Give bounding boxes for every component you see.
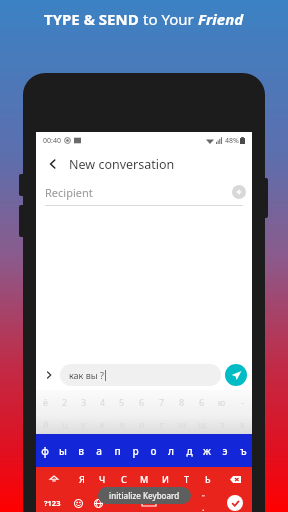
staticText: э [222, 444, 228, 458]
button[interactable]: Send [225, 364, 247, 386]
button[interactable]: л [163, 435, 179, 466]
button[interactable]: М [135, 468, 154, 490]
button[interactable]: - [233, 391, 251, 412]
staticText: к [100, 418, 105, 430]
staticText: TYPE & SEND [44, 9, 143, 29]
staticText: ъ [240, 444, 247, 458]
staticText: New conversation [69, 156, 175, 173]
button[interactable]: ш [173, 414, 191, 433]
button[interactable]: н [133, 414, 151, 433]
button[interactable]: 4 [94, 391, 111, 412]
button[interactable]: р [127, 435, 143, 466]
staticText: как вы ? [69, 369, 104, 381]
button[interactable]: 2 [56, 391, 73, 412]
staticText: Friend [198, 9, 244, 29]
staticText: Ь [205, 473, 211, 485]
button[interactable]: ю [213, 391, 231, 412]
button[interactable]: в [73, 435, 89, 466]
button[interactable]: Я [72, 468, 91, 490]
button[interactable]: С [114, 468, 133, 490]
button[interactable]: '' [191, 492, 216, 512]
button[interactable]: э [217, 435, 233, 466]
staticText: Т [184, 473, 190, 485]
staticText: ш [178, 418, 187, 430]
button[interactable]: 8 [173, 391, 191, 412]
button[interactable]: Add recipient [232, 185, 246, 199]
button[interactable]: з [213, 414, 231, 433]
button[interactable]: Backspace [219, 468, 251, 490]
button[interactable]: Back [41, 152, 65, 176]
button[interactable]: ъ [235, 435, 251, 466]
staticText: в [78, 444, 84, 458]
button[interactable]: г [153, 414, 171, 433]
button[interactable]: Shift [37, 468, 70, 490]
button[interactable]: Change language [89, 492, 107, 512]
staticText: й [43, 418, 49, 430]
button[interactable]: ?123 [37, 492, 67, 512]
staticText: 6 [199, 396, 205, 408]
button[interactable]: й [37, 414, 54, 433]
button[interactable]: Т [177, 468, 196, 490]
staticText: - [241, 396, 244, 408]
staticText: С [121, 473, 127, 485]
staticText: ё [43, 396, 48, 408]
button[interactable]: 7 [153, 391, 171, 412]
button[interactable]: к [94, 414, 111, 433]
button[interactable]: д [181, 435, 197, 466]
button[interactable]: И [156, 468, 175, 490]
button[interactable]: е [113, 414, 131, 433]
staticText: ц [62, 418, 68, 430]
staticText: п [114, 444, 121, 458]
staticText: ?123 [44, 498, 61, 508]
staticText: л [168, 444, 174, 458]
button[interactable]: Enter [227, 495, 243, 511]
button[interactable]: ы [55, 435, 71, 466]
button[interactable]: 5 [113, 391, 131, 412]
button[interactable]: Attach [41, 367, 57, 383]
button[interactable]: как вы ? [60, 364, 221, 386]
staticText: 00:40 [43, 136, 61, 146]
staticText: о [150, 444, 157, 458]
staticText: щ [198, 418, 207, 430]
button[interactable]: а [91, 435, 107, 466]
button[interactable]: Ь [198, 468, 217, 490]
button[interactable]: о [145, 435, 161, 466]
staticText: д [186, 444, 193, 458]
staticText: х [240, 418, 245, 430]
staticText: е [120, 418, 125, 430]
button[interactable]: ф [37, 435, 53, 466]
button[interactable]: у [75, 414, 92, 433]
staticText: Recipient [45, 185, 93, 200]
staticText: 4 [100, 396, 106, 408]
staticText: . [202, 501, 205, 512]
staticText: н [139, 418, 145, 430]
staticText: to Your [143, 9, 198, 29]
staticText: ю [218, 396, 226, 408]
button[interactable]: 6 [133, 391, 151, 412]
staticText: р [132, 444, 139, 458]
button[interactable]: ж [199, 435, 215, 466]
staticText: 3 [81, 396, 87, 408]
staticText: Ч [99, 473, 106, 485]
button[interactable]: п [109, 435, 125, 466]
staticText: г [160, 418, 164, 430]
staticText: 7 [159, 396, 165, 408]
button[interactable]: 6 [193, 391, 211, 412]
button[interactable]: ё [37, 391, 54, 412]
staticText: ж [203, 444, 211, 458]
staticText: initialize Keyboard [109, 490, 180, 501]
staticText: а [96, 444, 102, 458]
staticText: 2 [62, 396, 68, 408]
button[interactable]: х [233, 414, 251, 433]
button[interactable]: Space [109, 492, 189, 512]
staticText: ф [41, 444, 49, 458]
staticText: И [162, 473, 169, 485]
button[interactable]: ц [56, 414, 73, 433]
button[interactable]: Ч [93, 468, 112, 490]
button[interactable]: Emoji [69, 492, 87, 512]
staticText: 6 [139, 396, 145, 408]
button[interactable]: 3 [75, 391, 92, 412]
staticText: Я [79, 473, 85, 485]
button[interactable]: щ [193, 414, 211, 433]
staticText: у [81, 418, 86, 430]
